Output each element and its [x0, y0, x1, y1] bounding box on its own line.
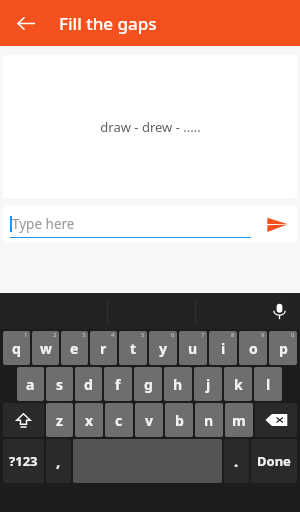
staticText: 2	[53, 331, 57, 339]
staticText: t	[130, 339, 137, 358]
staticText: k	[234, 375, 243, 394]
button[interactable]: z	[46, 403, 73, 437]
staticText: i	[221, 339, 226, 358]
button[interactable]: e	[61, 331, 88, 365]
staticText: j	[206, 375, 211, 394]
button[interactable]: i	[209, 331, 237, 365]
staticText: ,	[56, 451, 61, 471]
button[interactable]: k	[224, 367, 252, 401]
staticText: l	[266, 375, 271, 394]
staticText: r	[100, 339, 107, 358]
button[interactable]: b	[165, 403, 193, 437]
staticText: 0	[291, 331, 295, 339]
button[interactable]: p	[269, 331, 297, 365]
button[interactable]: q	[3, 331, 30, 365]
button[interactable]: d	[75, 367, 102, 401]
button[interactable]: f	[104, 367, 132, 401]
staticText: m	[232, 411, 246, 430]
staticText: 6	[171, 331, 175, 339]
button[interactable]: Type here	[10, 205, 251, 243]
staticText: e	[70, 339, 79, 358]
button[interactable]: Back	[8, 5, 44, 41]
button[interactable]: w	[32, 331, 59, 365]
staticText: w	[40, 339, 52, 358]
staticText: p	[279, 339, 288, 358]
button[interactable]: n	[195, 403, 223, 437]
staticText: s	[56, 375, 64, 394]
button[interactable]: Voice input	[264, 296, 294, 326]
staticText: h	[173, 375, 183, 394]
button[interactable]: draw - drew - .....	[3, 55, 297, 198]
staticText: n	[204, 411, 214, 430]
button[interactable]: r	[90, 331, 117, 365]
staticText: c	[115, 411, 123, 430]
staticText: x	[85, 411, 94, 430]
button[interactable]: ?123	[3, 439, 44, 483]
button[interactable]: j	[194, 367, 222, 401]
staticText: v	[145, 411, 153, 430]
staticText: a	[26, 375, 35, 394]
staticText: u	[188, 339, 198, 358]
staticText: 9	[261, 331, 265, 339]
staticText: ?123	[9, 452, 38, 470]
button[interactable]: u	[179, 331, 207, 365]
staticText: 3	[82, 331, 86, 339]
button[interactable]: y	[149, 331, 177, 365]
button[interactable]: Backspace	[255, 403, 297, 437]
staticText: z	[56, 411, 63, 430]
staticText: o	[249, 339, 258, 358]
staticText: Type here	[12, 215, 75, 233]
staticText: 8	[231, 331, 235, 339]
button[interactable]: .	[224, 439, 249, 483]
button[interactable]: a	[17, 367, 44, 401]
button[interactable]: s	[46, 367, 73, 401]
staticText: draw - drew - .....	[100, 118, 201, 136]
button[interactable]: l	[254, 367, 282, 401]
staticText: Done	[257, 452, 291, 470]
staticText: 1	[24, 331, 28, 339]
button[interactable]: o	[239, 331, 267, 365]
staticText: q	[12, 339, 21, 358]
button[interactable]: Send	[257, 205, 297, 243]
staticText: .	[234, 451, 239, 471]
button[interactable]: m	[225, 403, 253, 437]
staticText: 5	[141, 331, 145, 339]
button[interactable]: h	[164, 367, 192, 401]
button[interactable]: t	[119, 331, 147, 365]
staticText: f	[115, 375, 121, 394]
staticText: b	[175, 411, 184, 430]
button[interactable]: g	[134, 367, 162, 401]
button[interactable]: v	[135, 403, 163, 437]
staticText: y	[159, 339, 167, 358]
button[interactable]: ,	[46, 439, 71, 483]
staticText: Fill the gaps	[59, 12, 157, 35]
button[interactable]: c	[105, 403, 133, 437]
staticText: g	[144, 375, 153, 394]
staticText: 7	[201, 331, 205, 339]
button[interactable]: Done	[251, 439, 297, 483]
staticText: 4	[111, 331, 115, 339]
staticText: d	[84, 375, 93, 394]
button[interactable]: x	[75, 403, 103, 437]
button[interactable]: Shift	[3, 403, 44, 437]
